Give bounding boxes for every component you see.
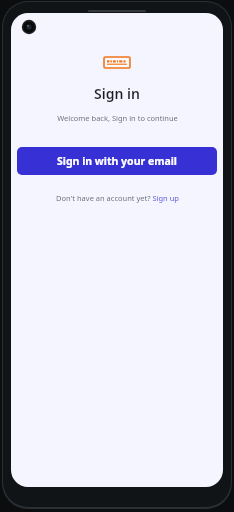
button[interactable]: Don't have an account yet? Sign up [56, 193, 179, 203]
staticText: Welcome back, Sign in to continue [57, 113, 178, 123]
button[interactable]: Sign in with your email [17, 147, 217, 175]
staticText: Sign in [94, 84, 140, 103]
staticText: Sign in with your email [57, 154, 177, 168]
staticText: Don't have an account yet? Sign up [56, 193, 179, 203]
other: App logo [104, 57, 130, 68]
